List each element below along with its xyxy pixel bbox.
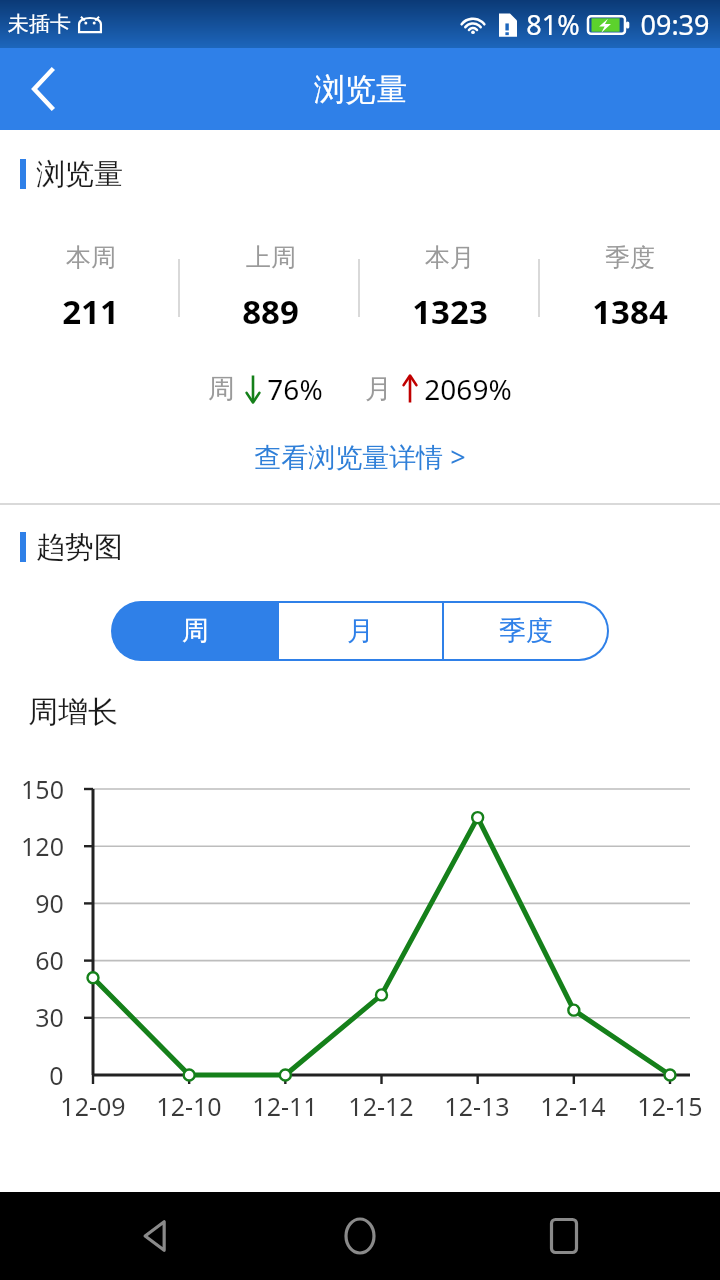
staticText: 周增长 — [28, 693, 118, 731]
button[interactable]: 月 — [279, 603, 442, 659]
staticText: 1384 — [592, 289, 668, 334]
staticText: 1323 — [412, 289, 488, 334]
staticText: 浏览量 — [36, 156, 123, 193]
staticText: 浏览量 — [314, 70, 407, 109]
staticText: 周 — [208, 372, 235, 406]
staticText: 季度 — [499, 614, 553, 648]
button[interactable]: 周 — [113, 603, 277, 659]
staticText: 09:39 — [640, 6, 710, 43]
staticText: 月 — [365, 372, 392, 406]
button[interactable]: Back — [0, 48, 86, 130]
staticText: 未插卡 — [8, 11, 71, 37]
staticText: 周 — [182, 614, 209, 648]
staticText: 120 — [21, 829, 64, 863]
button[interactable]: Back — [108, 1192, 204, 1280]
button[interactable]: 季度 — [444, 603, 607, 659]
staticText: 12-10 — [156, 1089, 222, 1123]
staticText: 趋势图 — [36, 529, 123, 566]
staticText: 本周 — [66, 242, 116, 273]
staticText: 上周 — [246, 242, 296, 273]
staticText: 季度 — [605, 242, 655, 273]
staticText: 12-15 — [637, 1089, 703, 1123]
staticText: 76% — [267, 370, 323, 408]
staticText: 81% — [526, 6, 580, 43]
staticText: 12-11 — [252, 1089, 318, 1123]
staticText: 0 — [49, 1058, 64, 1092]
staticText: 90 — [35, 886, 64, 920]
staticText: 211 — [62, 289, 119, 334]
staticText: 本月 — [425, 242, 475, 273]
staticText: 60 — [35, 943, 64, 977]
staticText: 2069% — [424, 370, 512, 408]
staticText: 889 — [242, 289, 299, 334]
staticText: 12-09 — [60, 1089, 126, 1123]
button[interactable]: Recents — [516, 1192, 612, 1280]
button[interactable]: 查看浏览量详情 > — [240, 432, 480, 481]
button[interactable]: Home — [312, 1192, 408, 1280]
staticText: 150 — [21, 772, 64, 806]
staticText: 12-13 — [444, 1089, 510, 1123]
staticText: 12-14 — [540, 1089, 606, 1123]
staticText: 30 — [35, 1000, 64, 1034]
staticText: 查看浏览量详情 > — [254, 438, 466, 475]
staticText: 12-12 — [348, 1089, 414, 1123]
staticText: 月 — [347, 614, 374, 648]
